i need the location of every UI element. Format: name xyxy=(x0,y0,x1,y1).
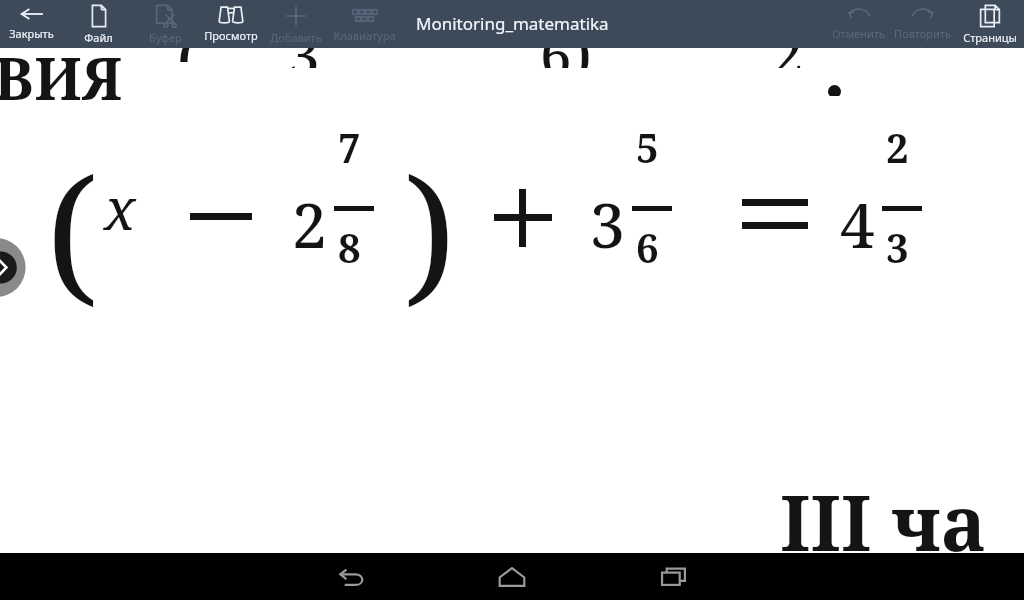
staticText: III ча xyxy=(780,470,987,574)
staticText: 7 xyxy=(338,120,361,174)
staticText: Отменить xyxy=(832,26,885,41)
staticText: 2 xyxy=(886,120,909,174)
staticText: 6) xyxy=(540,44,592,68)
button[interactable]: Закрыть xyxy=(0,0,70,48)
staticText: 8 xyxy=(338,220,361,274)
button[interactable]: Страницы xyxy=(951,0,1024,48)
button[interactable]: Буфер xyxy=(126,0,204,48)
staticText: ) xyxy=(404,128,456,332)
staticText: 3 xyxy=(288,44,320,68)
staticText: 5 xyxy=(636,120,659,174)
staticText: Добавить xyxy=(270,30,322,45)
button[interactable]: Home xyxy=(486,553,538,600)
button[interactable]: Добавить xyxy=(257,0,335,48)
staticText: Закрыть xyxy=(9,26,54,41)
staticText: Страницы xyxy=(963,30,1017,45)
button[interactable]: Файл xyxy=(59,0,137,48)
staticText: Просмотр xyxy=(204,28,258,43)
button[interactable]: Отменить xyxy=(819,0,897,48)
staticText: 3 xyxy=(886,220,909,274)
staticText: ( xyxy=(176,44,201,62)
staticText: 4 xyxy=(840,182,875,266)
staticText: ( xyxy=(46,128,98,332)
button[interactable]: Просмотр xyxy=(192,0,270,48)
staticText: 2 xyxy=(772,44,804,68)
staticText: 2 xyxy=(292,182,327,266)
staticText: Повторить xyxy=(894,26,951,41)
staticText: x xyxy=(104,168,136,247)
staticText: ВИЯ xyxy=(0,38,123,117)
staticText: Файл xyxy=(84,30,113,45)
staticText: Клавиатура xyxy=(333,28,396,43)
button[interactable]: Recent apps xyxy=(648,553,700,600)
staticText: Буфер xyxy=(149,30,182,45)
staticText: 6 xyxy=(636,220,659,274)
button[interactable]: Клавиатура xyxy=(325,0,403,48)
button[interactable]: Open panel xyxy=(0,228,20,304)
button[interactable]: Повторить xyxy=(883,0,961,48)
staticText: Monitoring_matematika xyxy=(416,12,609,35)
staticText: 3 xyxy=(590,182,625,266)
button[interactable]: Back xyxy=(326,553,378,600)
